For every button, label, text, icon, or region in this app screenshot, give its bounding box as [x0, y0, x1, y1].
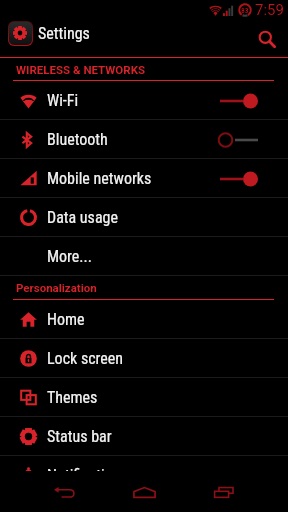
staticText: Mobile networks — [47, 169, 152, 188]
staticText: Wi-Fi — [47, 91, 79, 110]
staticText: Lock screen — [47, 349, 124, 368]
button[interactable]: Search — [254, 26, 280, 52]
button[interactable]: More... — [0, 237, 288, 276]
staticText: 83 — [241, 6, 249, 15]
button[interactable]: Recent apps — [200, 472, 248, 512]
staticText: Status bar — [47, 427, 112, 446]
staticText: 7:59 — [255, 1, 284, 19]
button[interactable]: Home — [120, 472, 168, 512]
staticText: Settings — [38, 24, 90, 43]
button[interactable]: Lock screen — [0, 339, 288, 378]
staticText: Notifications — [47, 466, 128, 485]
button[interactable]: Back — [40, 472, 88, 512]
staticText: WIRELESS & NETWORKS — [16, 63, 146, 76]
button[interactable]: Home — [0, 300, 288, 339]
button[interactable]: Wi-Fi — [0, 81, 288, 120]
button[interactable]: Status bar — [0, 417, 288, 456]
button[interactable]: Themes — [0, 378, 288, 417]
staticText: Bluetooth — [47, 130, 108, 149]
button[interactable]: Mobile networks — [0, 159, 288, 198]
staticText: More... — [47, 247, 92, 266]
button[interactable]: Data usage — [0, 198, 288, 237]
staticText: Home — [47, 310, 85, 329]
staticText: Personalization — [16, 281, 97, 294]
staticText: Data usage — [47, 208, 118, 227]
staticText: Themes — [47, 388, 98, 407]
button[interactable]: Notifications — [0, 456, 288, 495]
button[interactable]: Bluetooth — [0, 120, 288, 159]
